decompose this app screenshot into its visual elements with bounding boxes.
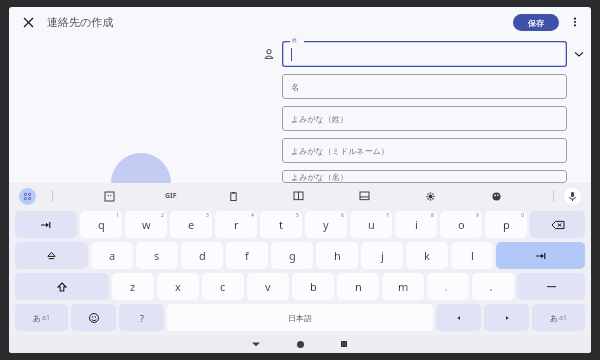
button[interactable]: d — [181, 242, 223, 269]
button[interactable]: i — [395, 211, 437, 238]
button[interactable]: よみがな（ミドルネーム） — [282, 138, 567, 163]
staticText: あ — [550, 313, 559, 323]
button[interactable]: キーボードの切り替え — [19, 188, 36, 205]
button[interactable]: テキスト編集 — [355, 187, 373, 205]
button[interactable]: g — [271, 242, 313, 269]
button[interactable]: シフト — [15, 273, 109, 300]
staticText: p — [503, 217, 510, 232]
staticText: 1 — [116, 212, 119, 219]
staticText: i — [415, 217, 418, 232]
staticText: 姓 — [292, 37, 297, 43]
button[interactable]: その他のオプション — [565, 12, 585, 32]
button[interactable]: 展開 — [571, 46, 587, 62]
staticText: よみがな（名） — [291, 172, 348, 182]
button[interactable]: k — [406, 242, 448, 269]
staticText: g — [289, 248, 296, 263]
button[interactable]: ? — [119, 304, 164, 331]
button[interactable]: m — [382, 273, 424, 300]
button[interactable]: GIF — [165, 191, 177, 201]
button[interactable]: v — [247, 273, 289, 300]
button[interactable]: a — [91, 242, 133, 269]
staticText: 3 — [206, 212, 209, 219]
staticText: e — [188, 217, 195, 232]
button[interactable]: x — [157, 273, 199, 300]
button[interactable]: q — [80, 211, 122, 238]
button[interactable]: z — [112, 273, 154, 300]
staticText: v — [265, 279, 271, 294]
staticText: ? — [140, 312, 144, 324]
button[interactable]: テーマ — [487, 187, 505, 205]
button[interactable]: j — [361, 242, 403, 269]
button[interactable]: 、 — [427, 273, 469, 300]
button[interactable]: 閉じる — [17, 11, 39, 33]
button[interactable]: 写真を追加 — [111, 153, 171, 213]
button[interactable]: 翻訳 — [289, 187, 307, 205]
staticText: h — [334, 248, 341, 263]
staticText: 4 — [251, 212, 254, 219]
button[interactable]: 入力モード切替 — [532, 304, 585, 331]
button[interactable]: 戻る — [246, 335, 266, 353]
staticText: 6 — [341, 212, 344, 219]
staticText: b — [310, 279, 317, 294]
staticText: 日本語 — [288, 313, 312, 323]
staticText: l — [471, 248, 474, 263]
staticText: j — [381, 248, 384, 263]
staticText: f — [245, 248, 249, 263]
staticText: 0 — [521, 212, 524, 219]
staticText: x — [175, 279, 181, 294]
staticText: よみがな（ミドルネーム） — [291, 146, 389, 156]
button[interactable]: 削除 — [530, 211, 585, 238]
button[interactable]: t — [260, 211, 302, 238]
button[interactable]: ー — [517, 273, 585, 300]
button[interactable]: o — [440, 211, 482, 238]
button[interactable]: f — [226, 242, 268, 269]
staticText: k — [424, 248, 430, 263]
button[interactable]: 日本語 — [167, 304, 433, 331]
button[interactable]: r — [215, 211, 257, 238]
button[interactable]: 設定 — [421, 187, 439, 205]
button[interactable]: タブ — [15, 211, 77, 238]
button[interactable]: l — [451, 242, 493, 269]
staticText: ー — [546, 280, 557, 294]
staticText: 保存 — [528, 18, 544, 28]
button[interactable]: w — [125, 211, 167, 238]
button[interactable]: ホーム — [290, 335, 310, 353]
button[interactable]: ステッカー — [100, 187, 118, 205]
button[interactable]: s — [136, 242, 178, 269]
button[interactable]: よみがな（姓） — [282, 106, 567, 131]
button[interactable]: n — [337, 273, 379, 300]
button[interactable]: 確定 — [496, 242, 585, 269]
button[interactable]: 姓 — [282, 41, 567, 67]
staticText: r — [234, 217, 239, 232]
button[interactable]: b — [292, 273, 334, 300]
staticText: 9 — [476, 212, 479, 219]
staticText: 8 — [431, 212, 434, 219]
staticText: z — [130, 279, 136, 294]
button[interactable]: y — [305, 211, 347, 238]
staticText: y — [323, 217, 329, 232]
button[interactable]: 絵文字 — [71, 304, 116, 331]
staticText: d — [199, 248, 206, 263]
button[interactable]: Caps Lock — [15, 242, 88, 269]
button[interactable]: 右 — [484, 304, 529, 331]
staticText: 、 — [444, 281, 453, 292]
button[interactable]: c — [202, 273, 244, 300]
button[interactable]: クリップボード — [224, 187, 242, 205]
button[interactable]: 保存 — [513, 14, 559, 31]
staticText: t — [279, 217, 283, 232]
button[interactable]: 最近のアプリ — [334, 335, 354, 353]
button[interactable]: 。 — [472, 273, 514, 300]
staticText: c — [220, 279, 226, 294]
button[interactable]: e — [170, 211, 212, 238]
button[interactable]: 音声入力 — [564, 188, 581, 205]
button[interactable]: 左 — [436, 304, 481, 331]
staticText: よみがな（姓） — [291, 114, 348, 124]
button[interactable]: u — [350, 211, 392, 238]
staticText: GIF — [165, 191, 177, 201]
button[interactable]: p — [485, 211, 527, 238]
staticText: a1 — [559, 313, 567, 323]
button[interactable]: 入力モード切替 — [15, 304, 68, 331]
button[interactable]: よみがな（名） — [282, 170, 567, 183]
button[interactable]: 名 — [282, 74, 567, 99]
button[interactable]: h — [316, 242, 358, 269]
